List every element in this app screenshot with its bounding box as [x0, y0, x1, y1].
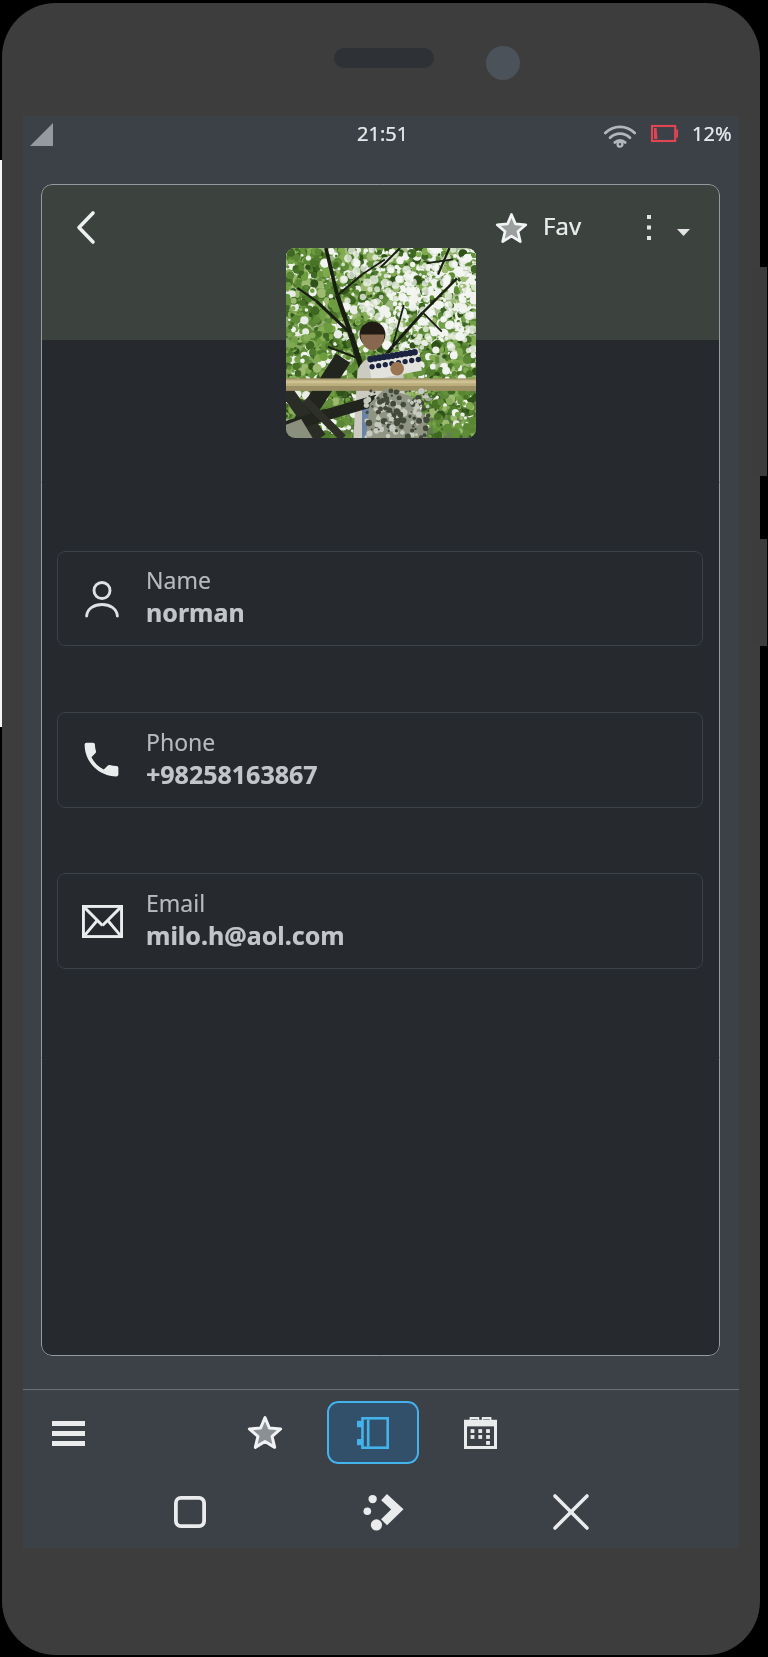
button[interactable]: Phone — [57, 712, 703, 808]
button[interactable]: Favorites — [228, 1395, 302, 1471]
staticText: +98258163867 — [146, 757, 318, 791]
button[interactable]: Menu — [31, 1395, 105, 1471]
button[interactable]: Email — [57, 873, 703, 969]
button[interactable]: Contacts — [327, 1401, 419, 1464]
button[interactable]: Show dropdown menu — [661, 210, 705, 254]
staticText: Email — [146, 887, 206, 918]
button[interactable]: More options — [627, 205, 671, 249]
staticText: 21:51 — [357, 120, 409, 147]
button[interactable]: Fav — [490, 204, 588, 252]
button[interactable]: Home — [345, 1476, 417, 1548]
staticText: Fav — [543, 209, 582, 242]
button[interactable]: Calendar — [443, 1395, 517, 1471]
button[interactable]: Recents — [154, 1476, 226, 1548]
staticText: Name — [146, 564, 211, 595]
button[interactable]: Back — [60, 201, 112, 253]
staticText: norman — [146, 595, 245, 629]
staticText: milo.h@aol.com — [146, 918, 345, 952]
staticText: 12% — [692, 120, 732, 147]
button[interactable]: Close — [535, 1476, 607, 1548]
button[interactable]: Name — [57, 551, 703, 646]
staticText: Phone — [146, 726, 216, 757]
